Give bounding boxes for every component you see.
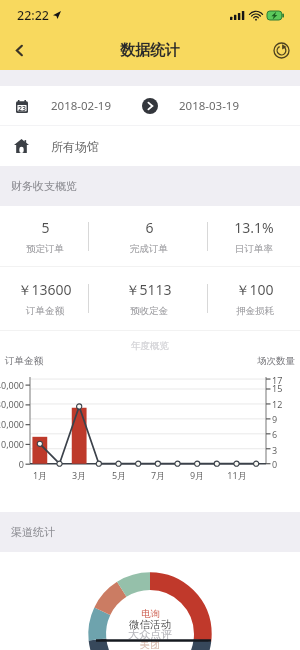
- staticText: ￥13600: [17, 280, 72, 299]
- staticText: 3月: [68, 469, 90, 481]
- button[interactable]: 5: [0, 206, 89, 266]
- staticText: 数据统计: [120, 41, 180, 60]
- button[interactable]: Refresh: [262, 31, 300, 69]
- button[interactable]: 6: [89, 206, 208, 266]
- staticText: 15: [272, 382, 283, 394]
- staticText: 预定订单: [26, 243, 64, 255]
- staticText: 2018-03-19: [179, 98, 240, 114]
- staticText: 大众点评: [128, 627, 172, 641]
- button[interactable]: 13.1%: [208, 206, 300, 266]
- staticText: 1月: [29, 469, 51, 481]
- staticText: 年度概览: [131, 340, 169, 352]
- staticText: 30,000: [0, 398, 24, 410]
- button[interactable]: ￥5113: [89, 267, 208, 330]
- staticText: 美团: [140, 638, 160, 650]
- staticText: 3: [272, 444, 278, 456]
- button[interactable]: ￥13600: [0, 267, 89, 330]
- button[interactable]: 23: [0, 86, 300, 126]
- staticText: 12: [272, 398, 283, 410]
- staticText: 40,000: [0, 379, 24, 391]
- staticText: 2018-02-19: [51, 98, 112, 114]
- staticText: 13.1%: [234, 218, 274, 237]
- staticText: 完成订单: [130, 243, 168, 255]
- staticText: 23: [18, 104, 27, 114]
- staticText: 0: [0, 458, 24, 470]
- button[interactable]: ￥100: [208, 267, 300, 330]
- staticText: 预收定金: [130, 305, 168, 317]
- staticText: 微信活动: [129, 618, 171, 631]
- staticText: 押金损耗: [236, 305, 274, 317]
- button[interactable]: 所有场馆: [0, 126, 300, 166]
- staticText: 10,000: [0, 438, 24, 450]
- staticText: 0: [272, 458, 278, 470]
- staticText: 9月: [186, 469, 208, 481]
- staticText: 财务收支概览: [11, 179, 77, 193]
- staticText: ￥5113: [125, 280, 172, 299]
- staticText: 订单金额: [26, 305, 64, 317]
- staticText: 订单金额: [5, 355, 43, 367]
- staticText: 5月: [108, 469, 130, 481]
- button[interactable]: Back: [0, 31, 38, 69]
- staticText: 日订单率: [235, 243, 273, 255]
- staticText: 渠道统计: [11, 525, 55, 539]
- staticText: 7月: [147, 469, 169, 481]
- staticText: 所有场馆: [51, 139, 99, 154]
- staticText: 6: [145, 218, 154, 237]
- staticText: 9: [272, 413, 278, 425]
- staticText: 5: [41, 218, 50, 237]
- staticText: 电询: [141, 608, 160, 620]
- staticText: 17: [272, 374, 283, 386]
- staticText: 6: [272, 428, 278, 440]
- staticText: 11月: [226, 469, 248, 481]
- staticText: 20,000: [0, 418, 24, 430]
- staticText: 22:22: [17, 7, 50, 24]
- staticText: 场次数量: [257, 355, 295, 367]
- staticText: ￥100: [235, 280, 274, 299]
